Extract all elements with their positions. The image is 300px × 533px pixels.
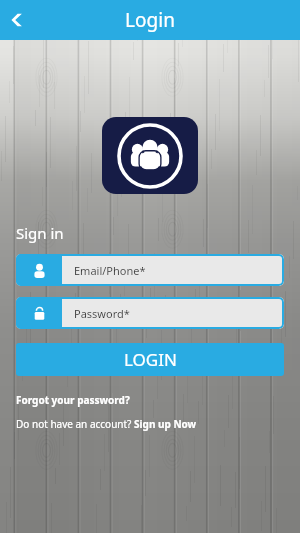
staticText: Login [125, 7, 175, 33]
button[interactable]: Forgot your password? [16, 393, 130, 407]
button[interactable]: Password* [16, 297, 284, 329]
staticText: LOGIN [124, 348, 177, 371]
staticText: Email/Phone* [74, 263, 146, 278]
staticText: Forgot your password? [16, 393, 130, 407]
button[interactable]: LOGIN [16, 343, 284, 376]
button[interactable]: Do not have an account? Sign up Now [16, 417, 197, 431]
staticText: Password* [74, 306, 130, 321]
staticText: Sign in [16, 223, 64, 243]
button[interactable]: Email/Phone* [16, 254, 284, 286]
button[interactable]: Back [0, 2, 36, 38]
staticText: Do not have an account? Sign up Now [16, 417, 197, 431]
